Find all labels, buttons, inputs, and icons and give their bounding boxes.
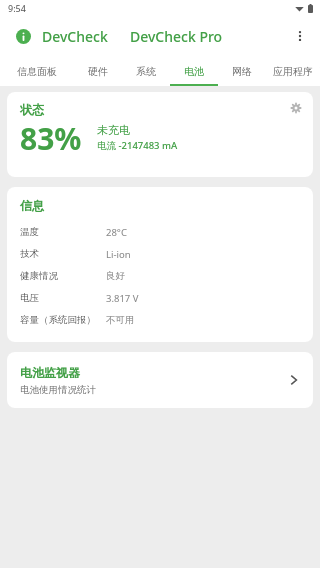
staticText: 3.817 V	[106, 292, 139, 305]
button[interactable]: DevCheck	[42, 27, 108, 46]
staticText: 信息	[20, 198, 44, 213]
staticText: 状态	[20, 102, 44, 117]
staticText: 28°C	[106, 226, 127, 239]
staticText: 83%	[20, 118, 82, 159]
staticText: 网络	[232, 65, 252, 78]
staticText: 系统	[136, 65, 156, 78]
staticText: 电压	[20, 292, 39, 304]
staticText: 应用程序	[273, 65, 313, 78]
staticText: 电池监视器	[20, 365, 80, 380]
staticText: 容量（系统回报）	[20, 314, 96, 326]
staticText: 9:54	[8, 2, 26, 14]
staticText: 未充电	[97, 123, 130, 137]
button[interactable]: 网络	[218, 56, 266, 86]
staticText: 电池使用情况统计	[20, 384, 96, 396]
button[interactable]: Settings	[285, 97, 307, 119]
staticText: 温度	[20, 226, 39, 238]
staticText: 电流 -2147483 mA	[97, 139, 178, 152]
button[interactable]: 信息面板	[0, 56, 74, 86]
button[interactable]: 电池监视器	[7, 352, 313, 408]
button[interactable]: DevCheck Pro	[130, 27, 223, 46]
staticText: 不可用	[106, 314, 135, 326]
staticText: 健康情况	[20, 270, 58, 282]
staticText: 技术	[20, 248, 39, 260]
staticText: 硬件	[88, 65, 108, 78]
button[interactable]: 电池	[170, 56, 218, 86]
button[interactable]: More options	[286, 22, 314, 50]
staticText: 电池	[184, 65, 204, 78]
button[interactable]: App info	[12, 25, 34, 47]
staticText: 信息面板	[17, 65, 57, 78]
staticText: 良好	[106, 270, 125, 282]
button[interactable]: 硬件	[74, 56, 122, 86]
staticText: Li-ion	[106, 248, 131, 261]
button[interactable]: 系统	[122, 56, 170, 86]
button[interactable]: 应用程序	[266, 56, 320, 86]
